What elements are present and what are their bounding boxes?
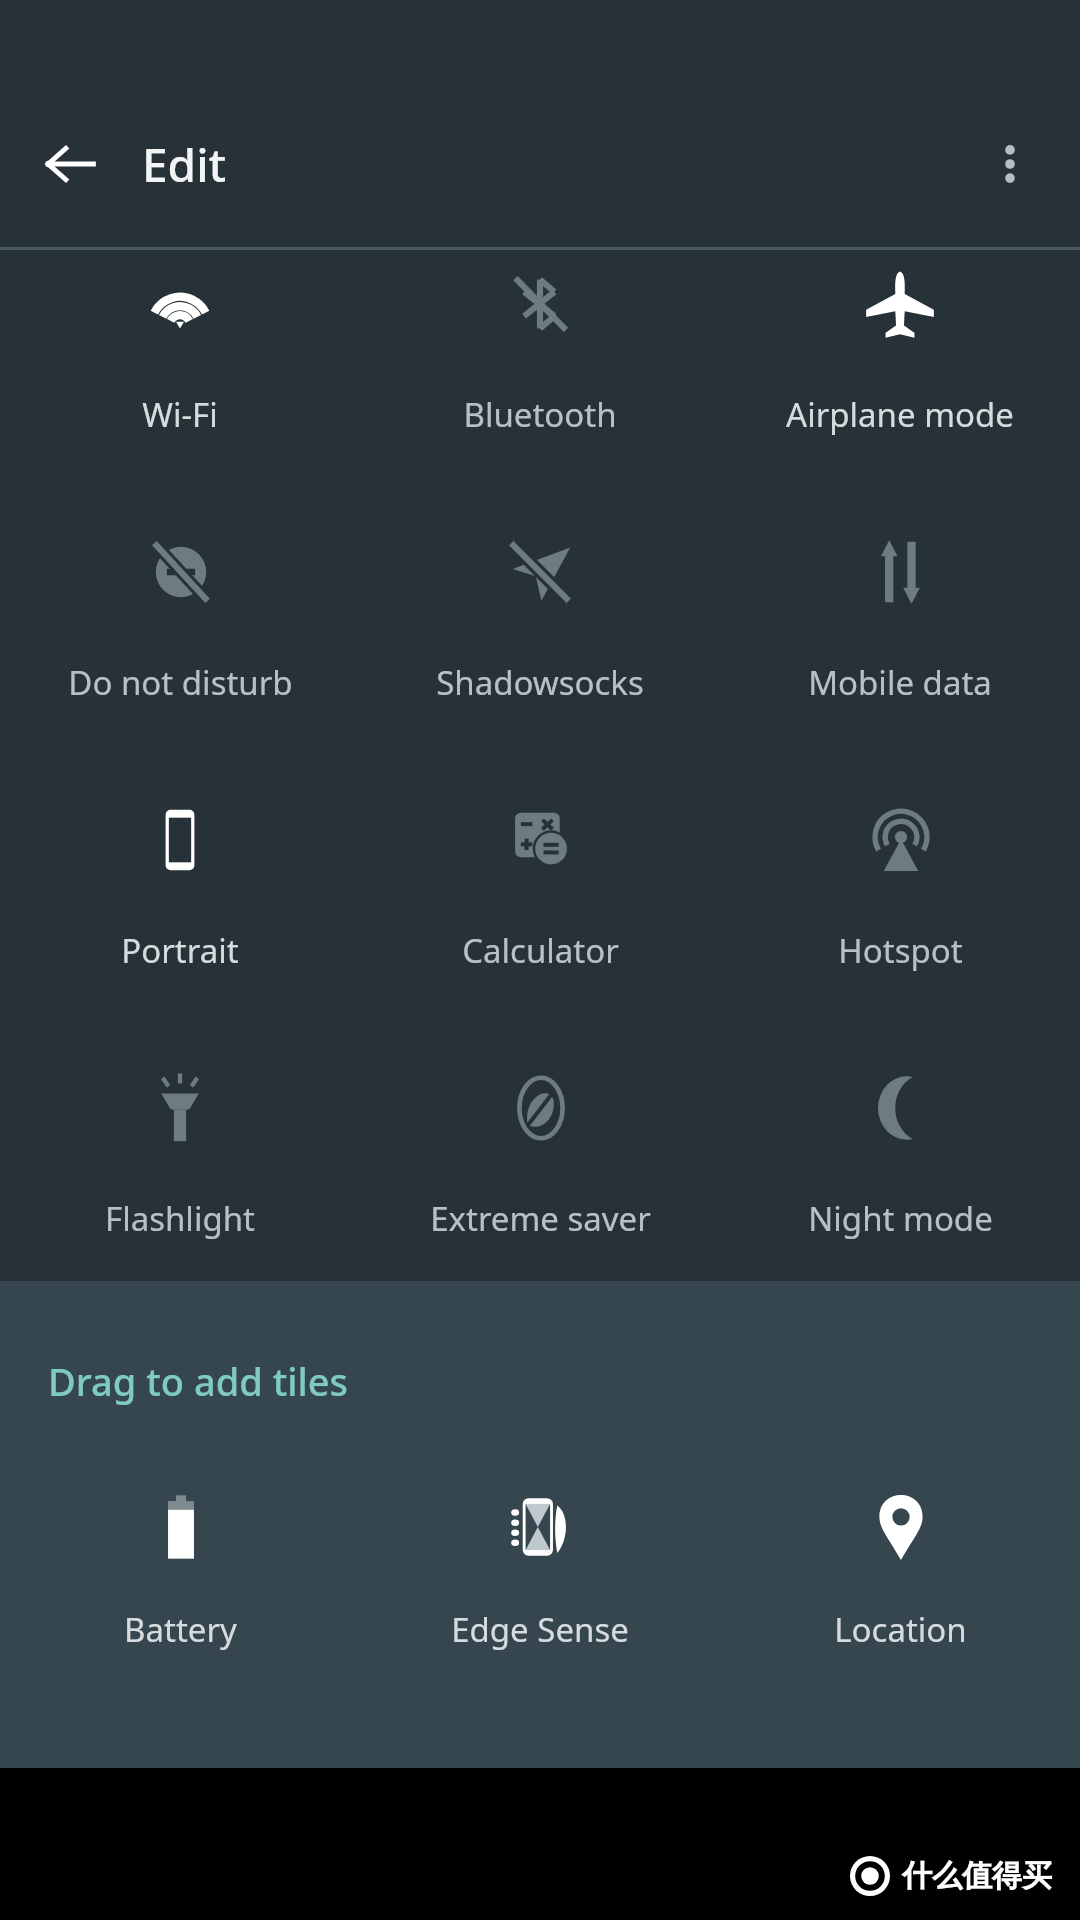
button[interactable]: Hotspot (720, 786, 1080, 1054)
button[interactable]: Portrait (0, 786, 360, 1054)
staticText: Airplane mode (786, 392, 1014, 437)
button[interactable]: Extreme saver (360, 1054, 720, 1281)
staticText: Mobile data (808, 660, 992, 705)
staticText: Extreme saver (430, 1196, 651, 1241)
button[interactable]: Battery (0, 1485, 360, 1721)
staticText: Bluetooth (463, 392, 617, 437)
staticText: Flashlight (105, 1196, 255, 1241)
button[interactable]: Wi-Fi (0, 250, 360, 518)
staticText: Portrait (121, 928, 239, 973)
staticText: Location (834, 1607, 967, 1652)
button[interactable]: Bluetooth (360, 250, 720, 518)
button[interactable]: Flashlight (0, 1054, 360, 1281)
button[interactable]: Airplane mode (720, 250, 1080, 518)
button[interactable]: Shadowsocks (360, 518, 720, 786)
staticText: Shadowsocks (436, 660, 644, 705)
staticText: Night mode (808, 1196, 993, 1241)
staticText: Hotspot (838, 928, 963, 973)
button[interactable]: Night mode (720, 1054, 1080, 1281)
staticText: Drag to add tiles (48, 1355, 349, 1407)
button[interactable]: Do not disturb (0, 518, 360, 786)
staticText: Edit (142, 133, 227, 196)
staticText: Do not disturb (68, 660, 293, 705)
button[interactable]: Back (26, 120, 114, 208)
button[interactable]: Mobile data (720, 518, 1080, 786)
button[interactable]: Location (720, 1485, 1080, 1721)
button[interactable]: Edge Sense (360, 1485, 720, 1721)
staticText: Edge Sense (451, 1607, 629, 1652)
staticText: Wi-Fi (142, 392, 218, 437)
button[interactable]: Calculator (360, 786, 720, 1054)
button[interactable]: More options (966, 120, 1054, 208)
staticText: 什么值得买 (902, 1857, 1052, 1895)
staticText: Calculator (462, 928, 619, 973)
staticText: Battery (124, 1607, 237, 1652)
